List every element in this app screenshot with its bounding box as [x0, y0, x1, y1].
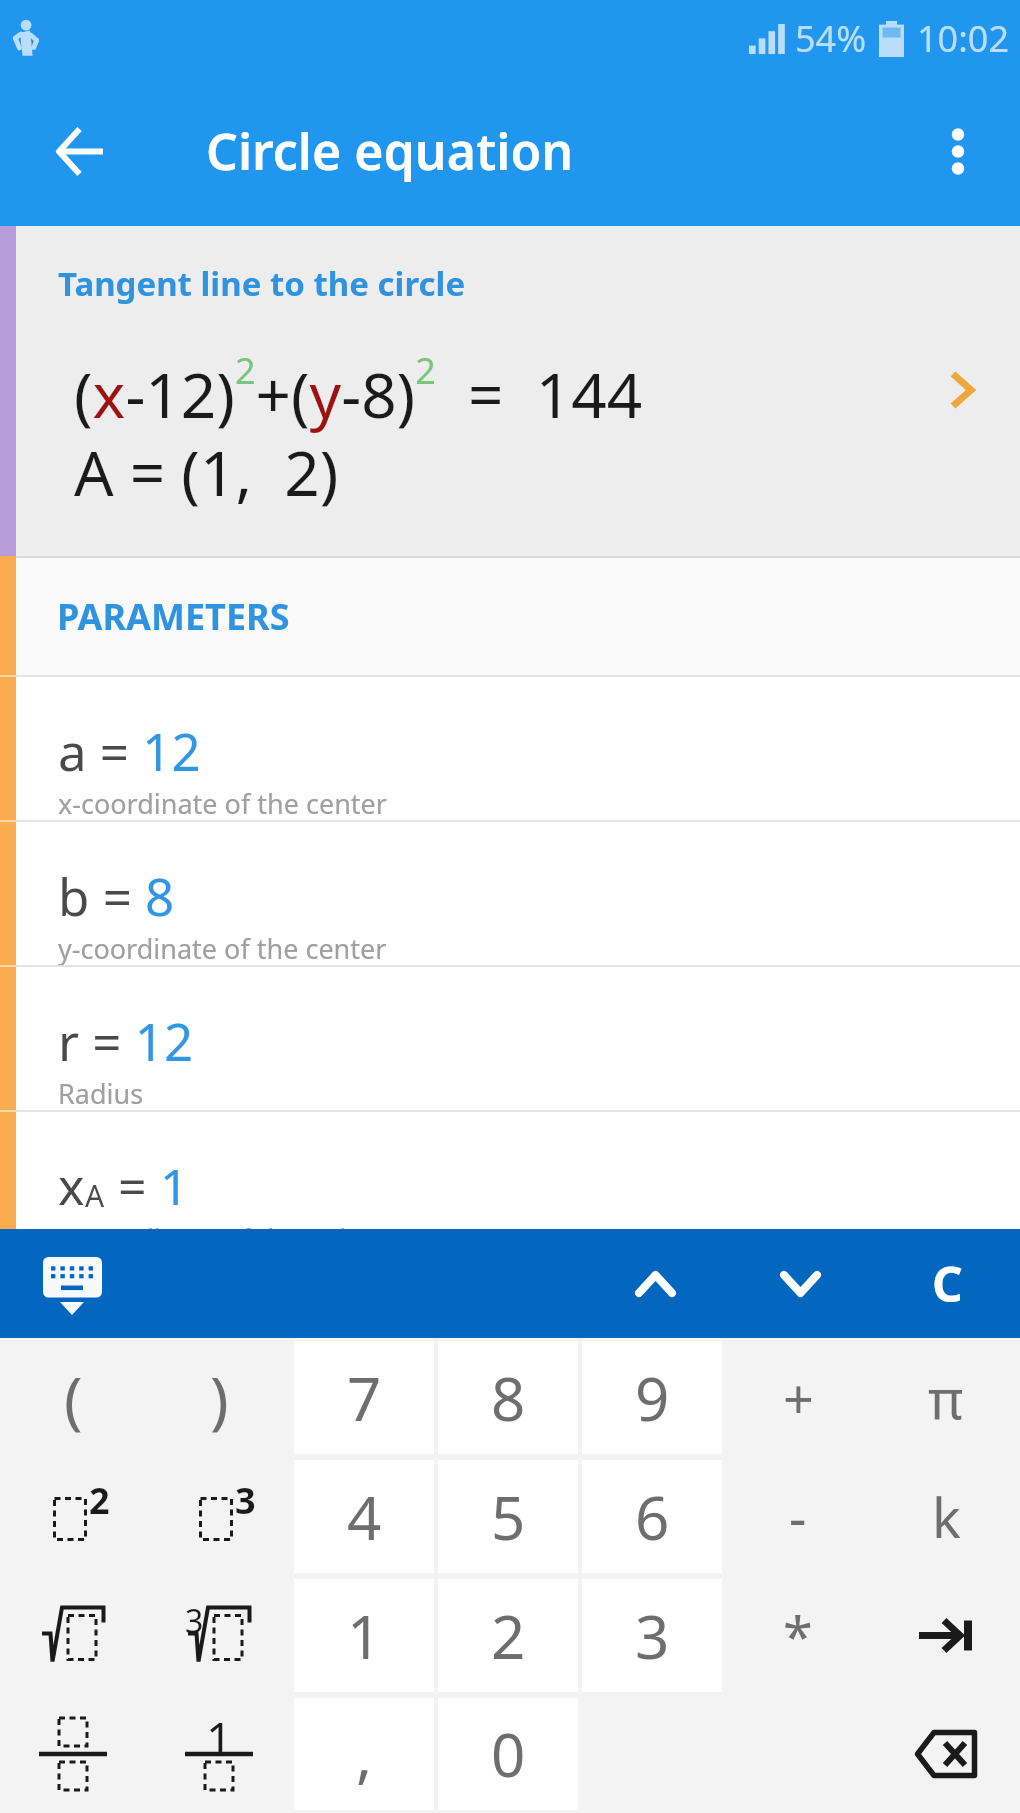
staticText: + [783, 1361, 814, 1435]
button[interactable]: x [0, 1112, 1020, 1229]
button[interactable]: ) [146, 1338, 292, 1457]
button[interactable]: Previous [583, 1229, 727, 1338]
button[interactable]: 8 [438, 1341, 578, 1454]
button[interactable]: + [724, 1338, 872, 1457]
button[interactable]: r = 12 [0, 967, 1020, 1112]
button[interactable]: 0 [438, 1698, 578, 1810]
button[interactable]: Cube root [146, 1576, 292, 1695]
staticText: , [356, 1713, 373, 1795]
button[interactable]: Hide keyboard [28, 1229, 118, 1338]
button[interactable]: 3 [582, 1579, 722, 1692]
staticText: 3 [185, 1599, 204, 1643]
staticText: x-coordinate of the center [58, 785, 387, 822]
staticText: ( [64, 1356, 83, 1440]
button[interactable]: Clear [875, 1229, 1020, 1338]
button[interactable]: , [294, 1698, 434, 1810]
staticText: 5 [491, 1476, 526, 1558]
button[interactable]: - [724, 1457, 872, 1576]
staticText: x-coordinate of the point [58, 1220, 373, 1229]
staticText: 10:02 [917, 14, 1010, 63]
button[interactable]: Next field [872, 1576, 1020, 1695]
button[interactable]: Fraction [0, 1695, 146, 1813]
button[interactable]: Cube [146, 1457, 292, 1576]
button[interactable]: 5 [438, 1460, 578, 1573]
button[interactable]: 1 [294, 1579, 434, 1692]
staticText: Radius [58, 1075, 144, 1112]
button[interactable]: 6 [582, 1460, 722, 1573]
staticText: Tangent line to the circle [58, 261, 466, 306]
staticText: Circle equation [206, 117, 574, 185]
button[interactable]: Open details [932, 360, 992, 420]
staticText: 1 [206, 1707, 233, 1770]
button[interactable]: b = 8 [0, 822, 1020, 967]
button[interactable]: Square [0, 1457, 146, 1576]
staticText: 54% [795, 14, 867, 63]
button[interactable]: Tangent line to the circle [0, 226, 1020, 556]
button[interactable]: Reciprocal [146, 1695, 292, 1813]
button[interactable]: a = 12 [0, 677, 1020, 822]
staticText: k [932, 1480, 961, 1554]
staticText: A [85, 1175, 105, 1216]
staticText: y-coordinate of the center [58, 930, 387, 967]
staticText: 9 [635, 1357, 670, 1439]
staticText: A = (1, 2) [74, 430, 339, 514]
button[interactable]: 9 [582, 1341, 722, 1454]
button[interactable]: Backspace [872, 1695, 1020, 1813]
staticText: π [928, 1361, 964, 1435]
button[interactable]: 2 [438, 1579, 578, 1692]
staticText: 2 [89, 1476, 110, 1525]
staticText: ) [210, 1356, 229, 1440]
other: Activity [15, 19, 42, 57]
staticText: 3 [635, 1595, 670, 1677]
staticText: x [58, 1152, 85, 1220]
button[interactable]: ( [0, 1338, 146, 1457]
staticText: (x-12)2+(y-8)2 = 144 [74, 346, 643, 436]
staticText: a = 12 [58, 716, 201, 785]
staticText: - [789, 1480, 807, 1554]
staticText: 8 [491, 1357, 526, 1439]
button[interactable]: Square root [0, 1576, 146, 1695]
staticText: 3 [235, 1476, 256, 1525]
button[interactable]: Back [47, 119, 111, 183]
button[interactable]: 7 [294, 1341, 434, 1454]
staticText: C [932, 1251, 963, 1316]
staticText: 7 [347, 1357, 382, 1439]
staticText: r = 12 [58, 1006, 194, 1075]
button[interactable]: More options [926, 119, 990, 183]
staticText: 1 [160, 1152, 189, 1220]
staticText: = [105, 1152, 160, 1220]
staticText: 4 [347, 1476, 382, 1558]
button[interactable]: π [872, 1338, 1020, 1457]
staticText: 1 [347, 1595, 382, 1677]
staticText: PARAMETERS [57, 592, 290, 641]
staticText: 6 [635, 1476, 670, 1558]
staticText: * [783, 1599, 813, 1673]
staticText: 0 [491, 1713, 526, 1795]
staticText: 2 [491, 1595, 526, 1677]
button[interactable]: * [724, 1576, 872, 1695]
button[interactable]: 4 [294, 1460, 434, 1573]
button[interactable]: k [872, 1457, 1020, 1576]
staticText: b = 8 [58, 861, 175, 930]
button[interactable]: Next [728, 1229, 872, 1338]
